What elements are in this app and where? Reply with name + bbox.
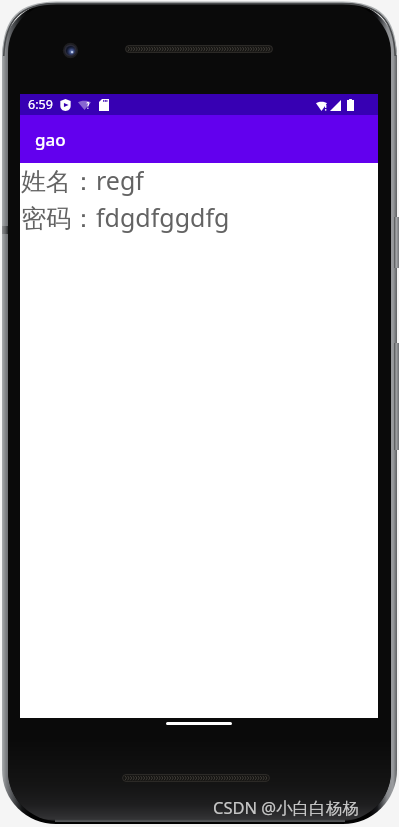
staticText: 姓名：regf <box>21 163 144 196</box>
button[interactable]: gao <box>20 115 378 163</box>
staticText: 6:59 <box>28 96 53 113</box>
staticText: 密码：fdgdfggdfg <box>21 200 230 234</box>
staticText: gao <box>35 128 66 151</box>
staticText: CSDN @小白白杨杨 <box>213 796 359 819</box>
